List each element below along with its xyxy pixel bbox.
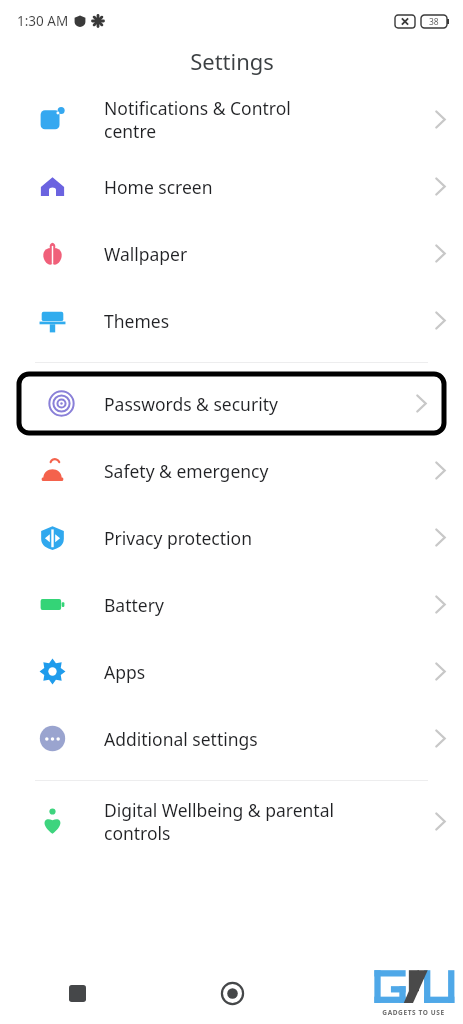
- staticText: Additional settings: [104, 727, 418, 751]
- button[interactable]: Themes: [0, 287, 463, 354]
- button[interactable]: Wallpaper: [0, 220, 463, 287]
- button[interactable]: Back: [309, 962, 463, 1024]
- button[interactable]: Additional settings: [0, 705, 463, 772]
- button[interactable]: Home: [155, 962, 309, 1024]
- button[interactable]: Battery: [0, 571, 463, 638]
- staticText: Passwords & security: [104, 392, 399, 416]
- staticText: Apps: [104, 660, 418, 684]
- staticText: Battery: [104, 593, 418, 617]
- staticText: 1:30 AM: [17, 12, 69, 30]
- button[interactable]: Privacy protection: [0, 504, 463, 571]
- staticText: Home screen: [104, 175, 418, 199]
- button[interactable]: Apps: [0, 638, 463, 705]
- staticText: Themes: [104, 309, 418, 333]
- staticText: GADGETS TO USE: [382, 1008, 445, 1017]
- button[interactable]: Home screen: [0, 153, 463, 220]
- staticText: Digital Wellbeing & parental controls: [104, 798, 418, 845]
- staticText: Notifications & Control centre: [104, 96, 418, 143]
- staticText: 38: [429, 16, 439, 28]
- button[interactable]: Recent apps: [0, 962, 155, 1024]
- staticText: Safety & emergency: [104, 459, 418, 483]
- staticText: Settings: [190, 46, 274, 76]
- button[interactable]: Notifications & Control centre: [0, 86, 463, 153]
- staticText: Privacy protection: [104, 526, 418, 550]
- button[interactable]: Passwords & security: [19, 374, 444, 433]
- button[interactable]: Digital Wellbeing & parental controls: [0, 788, 463, 855]
- staticText: Wallpaper: [104, 242, 418, 266]
- button[interactable]: Safety & emergency: [0, 437, 463, 504]
